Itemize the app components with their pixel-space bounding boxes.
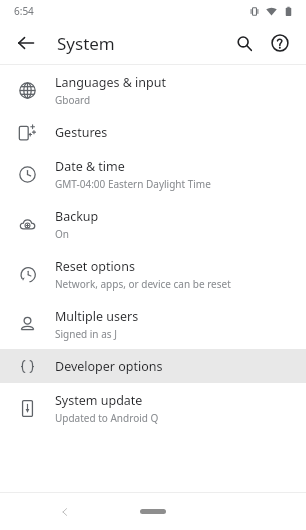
staticText: Signed in as J	[55, 327, 117, 341]
button[interactable]: Back	[52, 499, 78, 525]
staticText: Updated to Android Q	[55, 411, 159, 425]
button[interactable]: Search	[226, 25, 262, 61]
button[interactable]: Languages & input	[0, 65, 306, 115]
staticText: Date & time	[55, 158, 125, 175]
staticText: Reset options	[55, 258, 135, 275]
staticText: Multiple users	[55, 308, 139, 325]
button[interactable]: Date & time	[0, 149, 306, 199]
staticText: System update	[55, 392, 143, 409]
staticText: Gestures	[55, 124, 108, 141]
button[interactable]: Home	[140, 509, 166, 514]
staticText: System	[57, 32, 115, 55]
staticText: On	[55, 227, 69, 241]
staticText: Languages & input	[55, 74, 166, 91]
button[interactable]: Back	[8, 25, 44, 61]
button[interactable]: Gestures	[0, 115, 306, 149]
staticText: Developer options	[55, 358, 163, 375]
button[interactable]: Help	[262, 25, 298, 61]
button[interactable]: Multiple users	[0, 299, 306, 349]
button[interactable]: Developer options	[0, 349, 306, 383]
staticText: Gboard	[55, 93, 91, 107]
staticText: Backup	[55, 208, 99, 225]
staticText: GMT-04:00 Eastern Daylight Time	[55, 177, 211, 191]
staticText: 6:54	[14, 4, 34, 18]
button[interactable]: Backup	[0, 199, 306, 249]
button[interactable]: Reset options	[0, 249, 306, 299]
staticText: Network, apps, or device can be reset	[55, 277, 231, 291]
button[interactable]: System update	[0, 383, 306, 433]
